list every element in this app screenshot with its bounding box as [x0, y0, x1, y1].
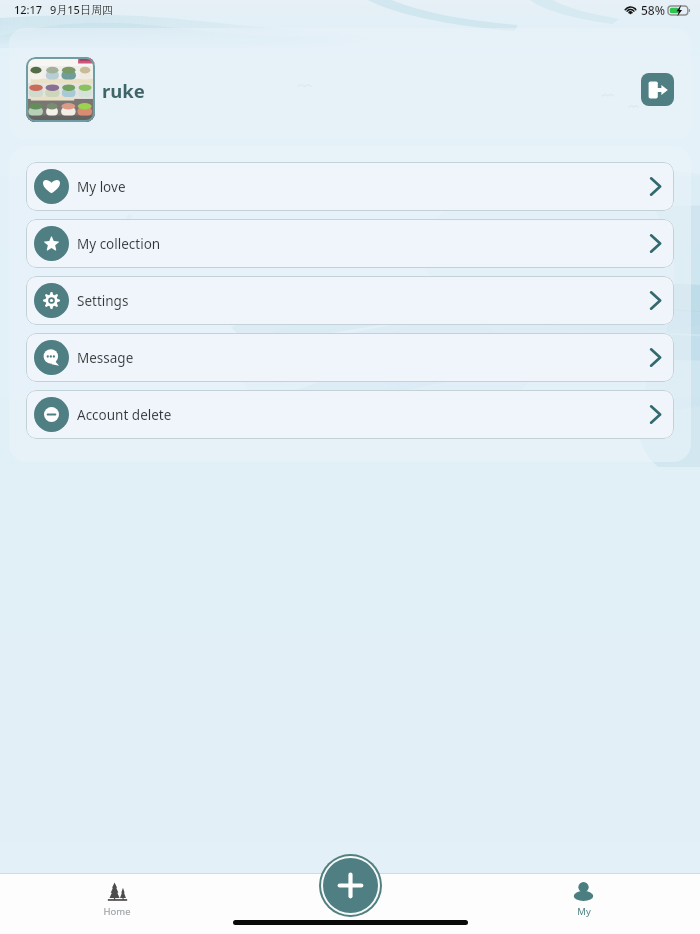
button[interactable]: Add	[323, 858, 378, 913]
button[interactable]: Home	[73, 874, 161, 934]
button[interactable]: Profile photo	[26, 57, 95, 122]
button[interactable]: Settings	[26, 276, 674, 325]
staticText: Message	[77, 349, 134, 367]
button[interactable]: Message	[26, 333, 674, 382]
button[interactable]: Log out	[641, 73, 674, 106]
staticText: My love	[77, 178, 126, 196]
staticText: 58%	[641, 2, 665, 18]
staticText: Home	[103, 905, 131, 918]
staticText: My	[577, 905, 591, 918]
button[interactable]: My love	[26, 162, 674, 211]
staticText: 12:17	[14, 2, 43, 17]
button[interactable]: My	[539, 874, 627, 934]
staticText: Settings	[77, 292, 129, 310]
button[interactable]: Account delete	[26, 390, 674, 439]
staticText: Account delete	[77, 406, 172, 424]
staticText: 9月15日周四	[50, 2, 113, 17]
staticText: My collection	[77, 235, 161, 253]
staticText: ruke	[102, 78, 145, 103]
button[interactable]: My collection	[26, 219, 674, 268]
